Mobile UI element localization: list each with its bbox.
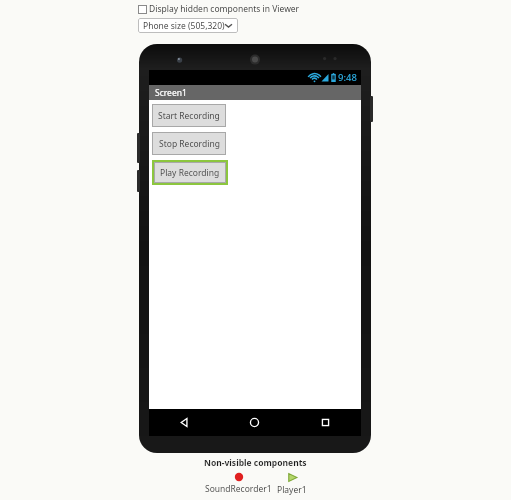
- button[interactable]: Stop Recording: [152, 132, 226, 155]
- button[interactable]: Home: [219, 409, 290, 436]
- button[interactable]: Display hidden components in Viewer: [138, 3, 300, 15]
- button[interactable]: Start Recording: [152, 104, 226, 127]
- staticText: Display hidden components in Viewer: [149, 3, 300, 15]
- button[interactable]: SoundRecorder1: [205, 472, 272, 495]
- staticText: Stop Recording: [159, 138, 220, 150]
- staticText: Screen1: [155, 87, 187, 99]
- other: Player1: [287, 472, 298, 483]
- button[interactable]: Phone size (505,320): [138, 18, 238, 33]
- button[interactable]: Player1: [277, 472, 307, 496]
- staticText: Play Recording: [160, 167, 220, 179]
- staticText: SoundRecorder1: [205, 483, 272, 495]
- staticText: Phone size (505,320): [143, 20, 225, 32]
- button[interactable]: Back: [149, 409, 219, 436]
- staticText: Player1: [277, 484, 307, 496]
- button[interactable]: Recents: [290, 409, 361, 436]
- staticText: Non-visible components: [204, 457, 307, 469]
- button[interactable]: Play Recording: [154, 162, 226, 183]
- staticText: Start Recording: [158, 110, 220, 122]
- staticText: 9:48: [338, 71, 357, 84]
- other: SoundRecorder1: [234, 472, 244, 482]
